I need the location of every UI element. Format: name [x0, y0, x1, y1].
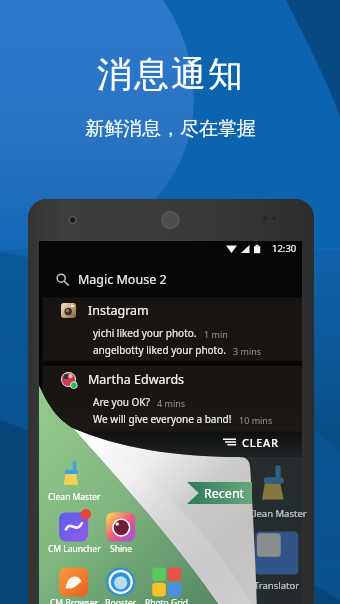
staticText: Translator: [254, 579, 300, 592]
staticText: CM Launcher: [48, 543, 101, 555]
other: Search: [56, 273, 69, 286]
staticText: 12:30: [272, 242, 297, 255]
staticText: 新鲜消息，尽在掌握: [85, 117, 256, 141]
staticText: 10 mins: [239, 414, 273, 426]
staticText: CM Browser: [50, 597, 99, 604]
button[interactable]: Recent: [187, 482, 252, 504]
staticText: Clean Master: [48, 491, 101, 503]
staticText: yichi liked your photo.: [93, 326, 197, 340]
staticText: 4 mins: [157, 397, 186, 409]
staticText: Booster: [105, 597, 137, 604]
staticText: CLEAR: [242, 435, 279, 449]
staticText: Are you OK?: [93, 395, 150, 409]
staticText: angelbotty liked your photo.: [93, 343, 226, 357]
staticText: Magic Mouse 2: [78, 271, 167, 288]
staticText: 3 mins: [233, 345, 262, 357]
staticText: Photo Grid: [145, 597, 189, 604]
staticText: Instagram: [88, 302, 149, 319]
button[interactable]: Martha Edwards: [43, 366, 306, 432]
button[interactable]: Search: [39, 267, 302, 291]
staticText: Shine: [110, 543, 133, 555]
staticText: 消息通知: [96, 52, 244, 96]
button[interactable]: CLEAR: [220, 433, 282, 451]
staticText: Recent: [204, 485, 245, 502]
staticText: Clean Master: [248, 507, 307, 520]
button[interactable]: Instagram: [43, 297, 306, 360]
staticText: Martha Edwards: [88, 371, 185, 388]
staticText: We will give everyone a band!: [93, 412, 232, 426]
staticText: 1 min: [204, 328, 228, 340]
